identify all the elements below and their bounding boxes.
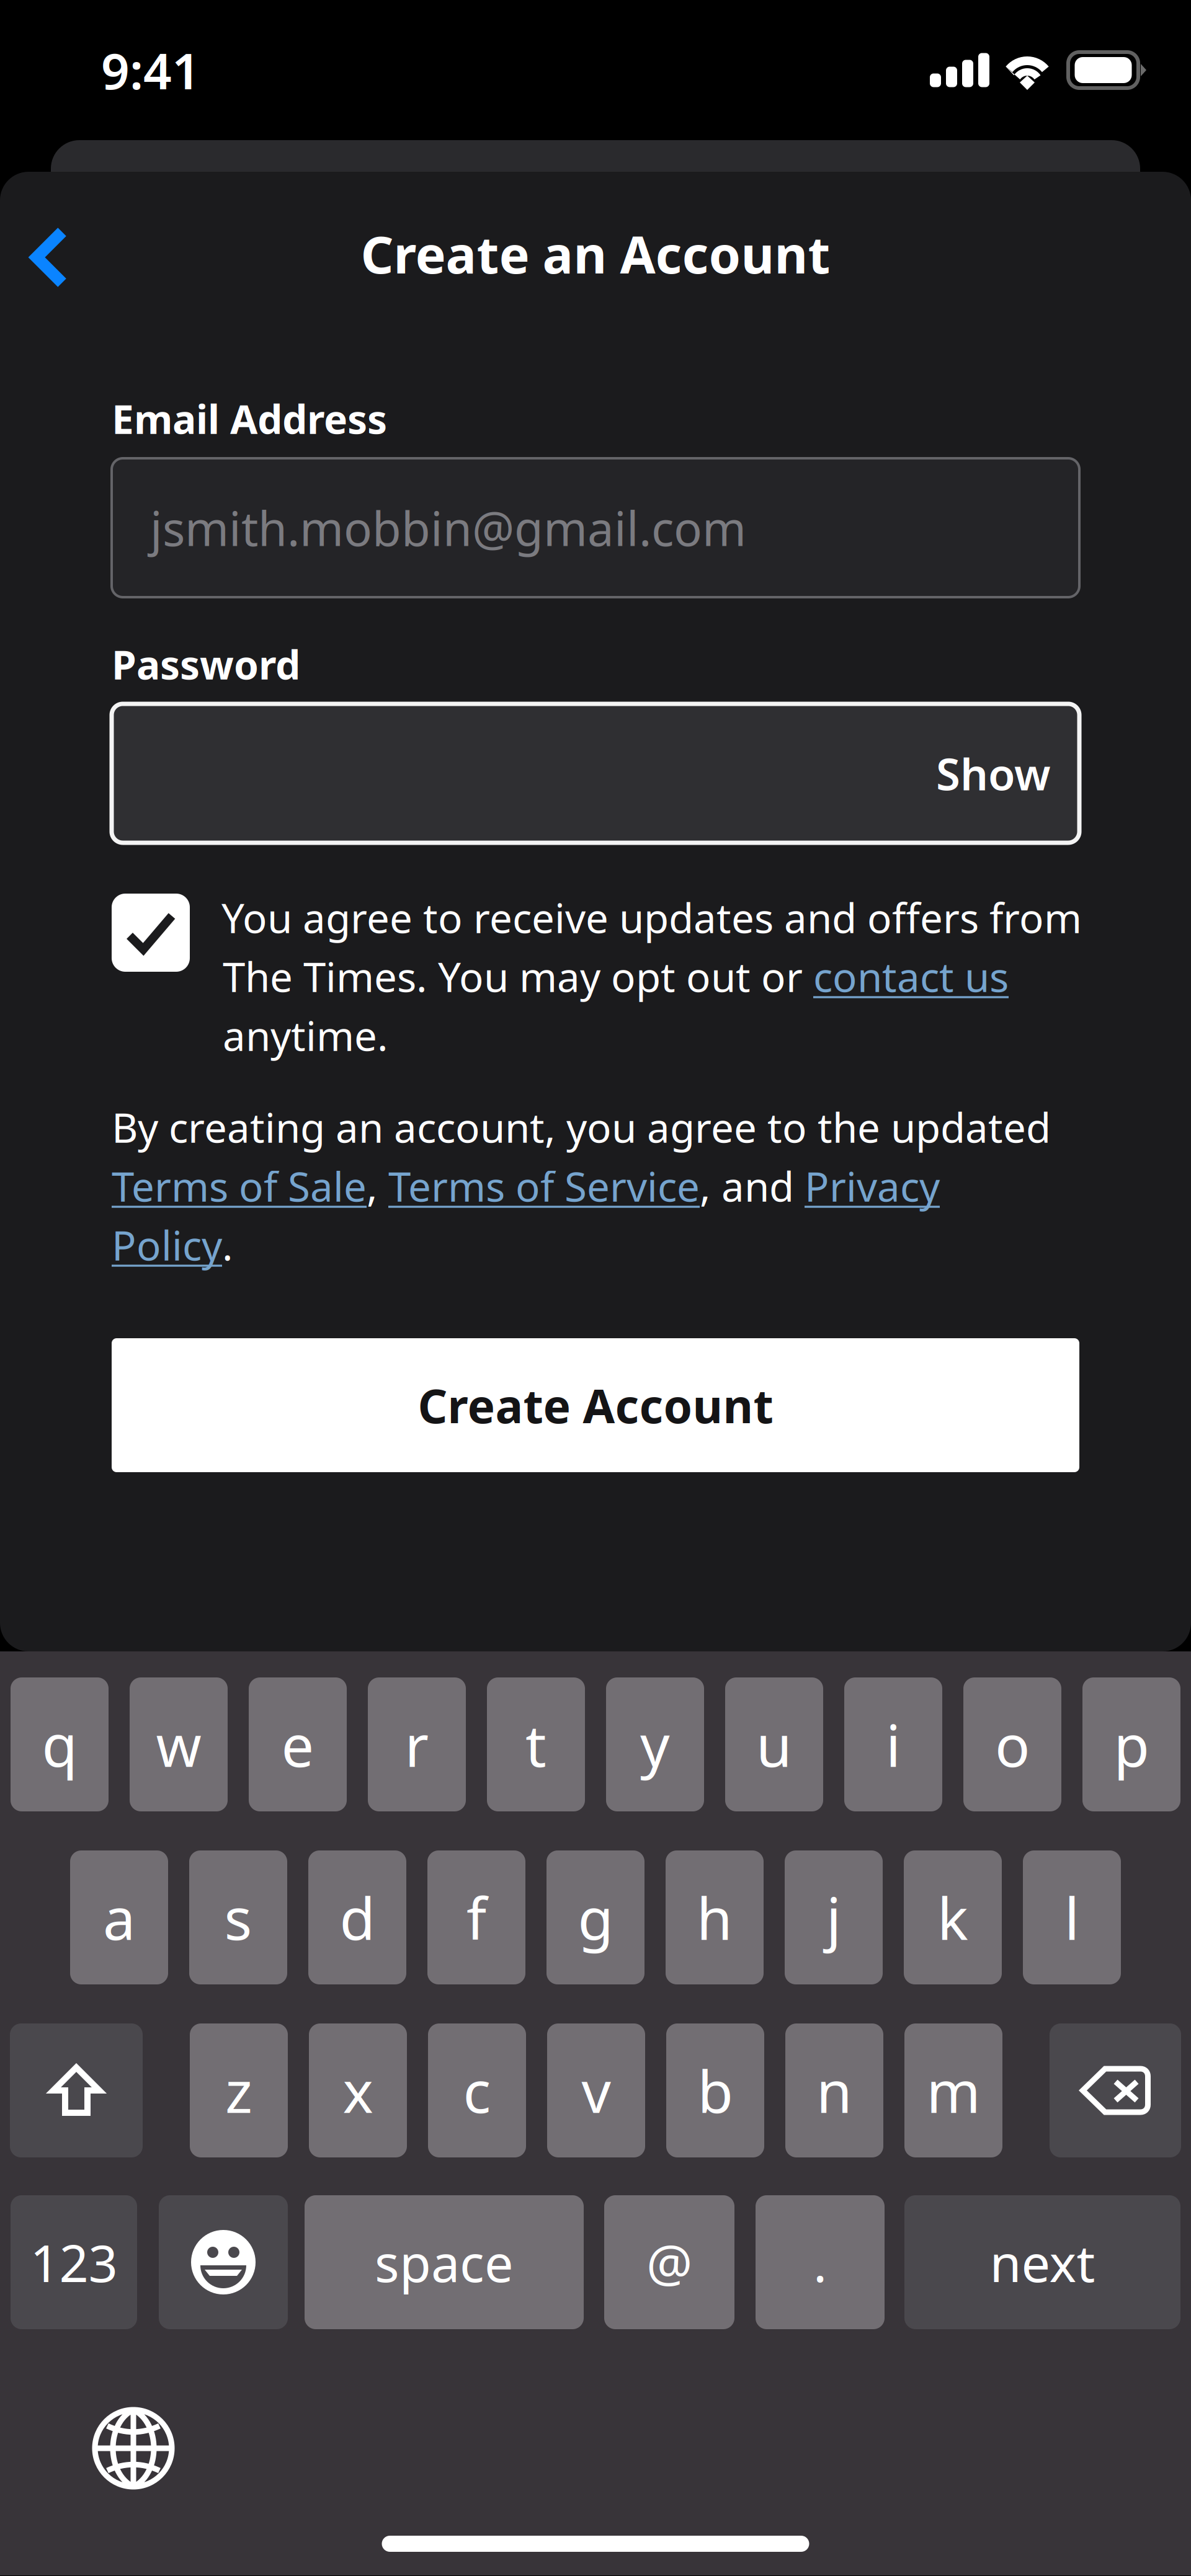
staticText: , (367, 1159, 388, 1213)
button[interactable]: a (70, 1850, 168, 1984)
staticText: 123 (30, 2228, 118, 2296)
button[interactable]: k (904, 1850, 1002, 1984)
button[interactable]: c (428, 2023, 526, 2157)
staticText: Privacy (805, 1159, 940, 1213)
button[interactable]: o (963, 1677, 1061, 1811)
button[interactable]: next (904, 2195, 1180, 2329)
staticText: Terms of Sale (112, 1159, 367, 1213)
staticText: t (525, 1706, 546, 1783)
staticText: n (816, 2052, 852, 2129)
staticText: anytime. (223, 1008, 388, 1062)
button[interactable]: d (308, 1850, 406, 1984)
staticText: space (375, 2228, 514, 2296)
button[interactable]: m (904, 2023, 1002, 2157)
button[interactable]: v (547, 2023, 645, 2157)
button[interactable]: f (427, 1850, 525, 1984)
staticText: g (578, 1879, 613, 1956)
staticText: Email Address (112, 392, 387, 445)
staticText: The Times. You may opt out or (223, 949, 813, 1003)
button[interactable]: You agree to receive updates and offers … (112, 888, 1079, 1068)
button[interactable]: x (309, 2023, 407, 2157)
staticText: q (42, 1706, 77, 1783)
staticText: Password (112, 638, 300, 691)
staticText: p (1114, 1706, 1149, 1783)
button[interactable]: Next keyboard (71, 2389, 195, 2507)
staticText: c (463, 2052, 491, 2129)
button[interactable]: p (1082, 1677, 1180, 1811)
button[interactable]: n (785, 2023, 883, 2157)
button[interactable]: h (666, 1850, 764, 1984)
staticText: 9:41 (101, 37, 200, 103)
staticText: Show (936, 744, 1051, 802)
staticText: Policy (112, 1218, 222, 1272)
staticText: contact us (813, 949, 1009, 1003)
button[interactable]: e (249, 1677, 347, 1811)
staticText: x (343, 2052, 373, 2129)
staticText: v (582, 2052, 611, 2129)
staticText: Create an Account (361, 220, 830, 288)
staticText: o (995, 1706, 1030, 1783)
button[interactable]: @ (604, 2195, 734, 2329)
staticText: u (756, 1706, 792, 1783)
button[interactable]: g (546, 1850, 645, 1984)
button[interactable]: . (756, 2195, 885, 2329)
staticText: z (225, 2052, 252, 2129)
staticText: k (937, 1879, 968, 1956)
button[interactable]: z (190, 2023, 288, 2157)
staticText: By creating an account, you agree to the… (112, 1100, 1051, 1154)
button[interactable]: l (1023, 1850, 1121, 1984)
button[interactable]: 123 (11, 2195, 137, 2329)
button[interactable]: t (487, 1677, 585, 1811)
button[interactable]: Emoji (159, 2195, 288, 2329)
staticText: l (1064, 1879, 1079, 1956)
button[interactable]: Create Account (112, 1338, 1079, 1472)
staticText: e (281, 1706, 314, 1783)
staticText: Terms of Service (388, 1159, 700, 1213)
staticText: , and (700, 1159, 805, 1213)
staticText: a (103, 1879, 135, 1956)
staticText: w (156, 1706, 201, 1783)
staticText: @ (646, 2228, 692, 2296)
staticText: d (340, 1879, 375, 1956)
staticText: h (697, 1879, 733, 1956)
staticText: r (405, 1706, 429, 1783)
staticText: j (826, 1879, 841, 1956)
staticText: . (813, 2228, 827, 2296)
button[interactable]: j (785, 1850, 883, 1984)
staticText: m (926, 2052, 980, 2129)
staticText: s (224, 1879, 252, 1956)
button[interactable]: q (11, 1677, 109, 1811)
staticText: You agree to receive updates and offers … (221, 891, 1082, 944)
staticText: . (222, 1218, 233, 1272)
staticText: jsmith.mobbin@gmail.com (150, 496, 746, 559)
button[interactable]: r (368, 1677, 466, 1811)
staticText: b (698, 2052, 733, 2129)
button[interactable]: space (305, 2195, 584, 2329)
staticText: f (466, 1879, 486, 1956)
staticText: next (990, 2228, 1095, 2296)
staticText: y (640, 1706, 670, 1783)
button[interactable]: Delete (1050, 2023, 1181, 2157)
button[interactable]: Shift (10, 2023, 143, 2157)
button[interactable]: i (844, 1677, 942, 1811)
staticText: Create Account (418, 1374, 773, 1436)
button[interactable]: s (189, 1850, 287, 1984)
button[interactable]: u (725, 1677, 823, 1811)
button[interactable]: y (606, 1677, 704, 1811)
staticText: i (886, 1706, 901, 1783)
button[interactable]: Back (6, 218, 93, 290)
button[interactable]: w (130, 1677, 228, 1811)
button[interactable]: b (666, 2023, 764, 2157)
